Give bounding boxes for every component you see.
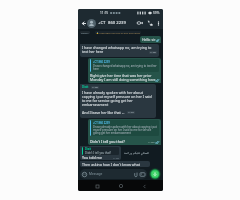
staticText: Message <box>89 172 103 176</box>
button[interactable]: +CT 860 2239 <box>88 58 161 83</box>
staticText: I have changed whatsapp no, am trying to… <box>82 45 157 54</box>
staticText: Didn't I tell you that? <box>90 139 125 144</box>
staticText: Then asking how I don't know what going … <box>82 162 148 166</box>
button[interactable]: Back <box>140 182 148 190</box>
button[interactable]: Message <box>80 169 147 179</box>
button[interactable]: Send voice message <box>149 168 161 180</box>
staticText: Dixit <box>82 85 89 89</box>
button[interactable]: Hello sir <box>140 36 161 43</box>
staticText: Hello sir <box>142 37 156 42</box>
staticText: Didn't I tell you that? <box>85 151 112 155</box>
staticText: 59% <box>153 11 160 15</box>
staticText: +CT 860 2239 <box>93 60 110 64</box>
staticText: I have already spoken with her about cop… <box>82 90 154 107</box>
button[interactable]: Dixit <box>80 84 156 118</box>
staticText: 11:06 <box>148 79 154 82</box>
staticText: Dixit <box>85 147 91 151</box>
button[interactable]: +CT 860 2239 <box>88 119 161 145</box>
staticText: I have already spoken with her about cop… <box>93 125 157 135</box>
staticText: You told me <box>82 155 102 160</box>
staticText: 860 2239 <box>108 20 126 26</box>
staticText: السلام عليكم ورحمة <box>124 151 150 155</box>
staticText: 11:09 <box>113 157 119 160</box>
staticText: 11:06 <box>92 86 98 89</box>
staticText: 11:07 <box>128 111 134 114</box>
staticText: TODAY <box>81 31 89 34</box>
button[interactable]: Recent apps <box>93 182 101 190</box>
button[interactable]: Home <box>117 182 125 190</box>
button[interactable]: Video call <box>136 19 144 27</box>
button[interactable]: Back <box>80 20 87 27</box>
staticText: I have changed whatsapp no, am trying to… <box>93 64 157 71</box>
button[interactable]: More options <box>155 20 161 26</box>
staticText: Right give her time that was her prior M… <box>90 73 159 82</box>
staticText: 11:15 <box>100 11 109 15</box>
staticText: +CT <box>98 20 106 26</box>
button[interactable]: I have changed whatsapp no, am trying to… <box>80 44 159 57</box>
staticText: 🔒 Messages are end-to-end encrypted <box>96 31 140 34</box>
button[interactable]: Dixit <box>80 146 121 160</box>
staticText: 11:08 <box>148 141 154 144</box>
staticText: And I leave her like that ... <box>82 110 125 115</box>
button[interactable]: Call <box>146 19 154 27</box>
staticText: 11:05 <box>150 51 156 54</box>
button[interactable]: Then asking how I don't know what going … <box>80 161 150 167</box>
staticText: +CT 860 2239 <box>93 121 110 125</box>
